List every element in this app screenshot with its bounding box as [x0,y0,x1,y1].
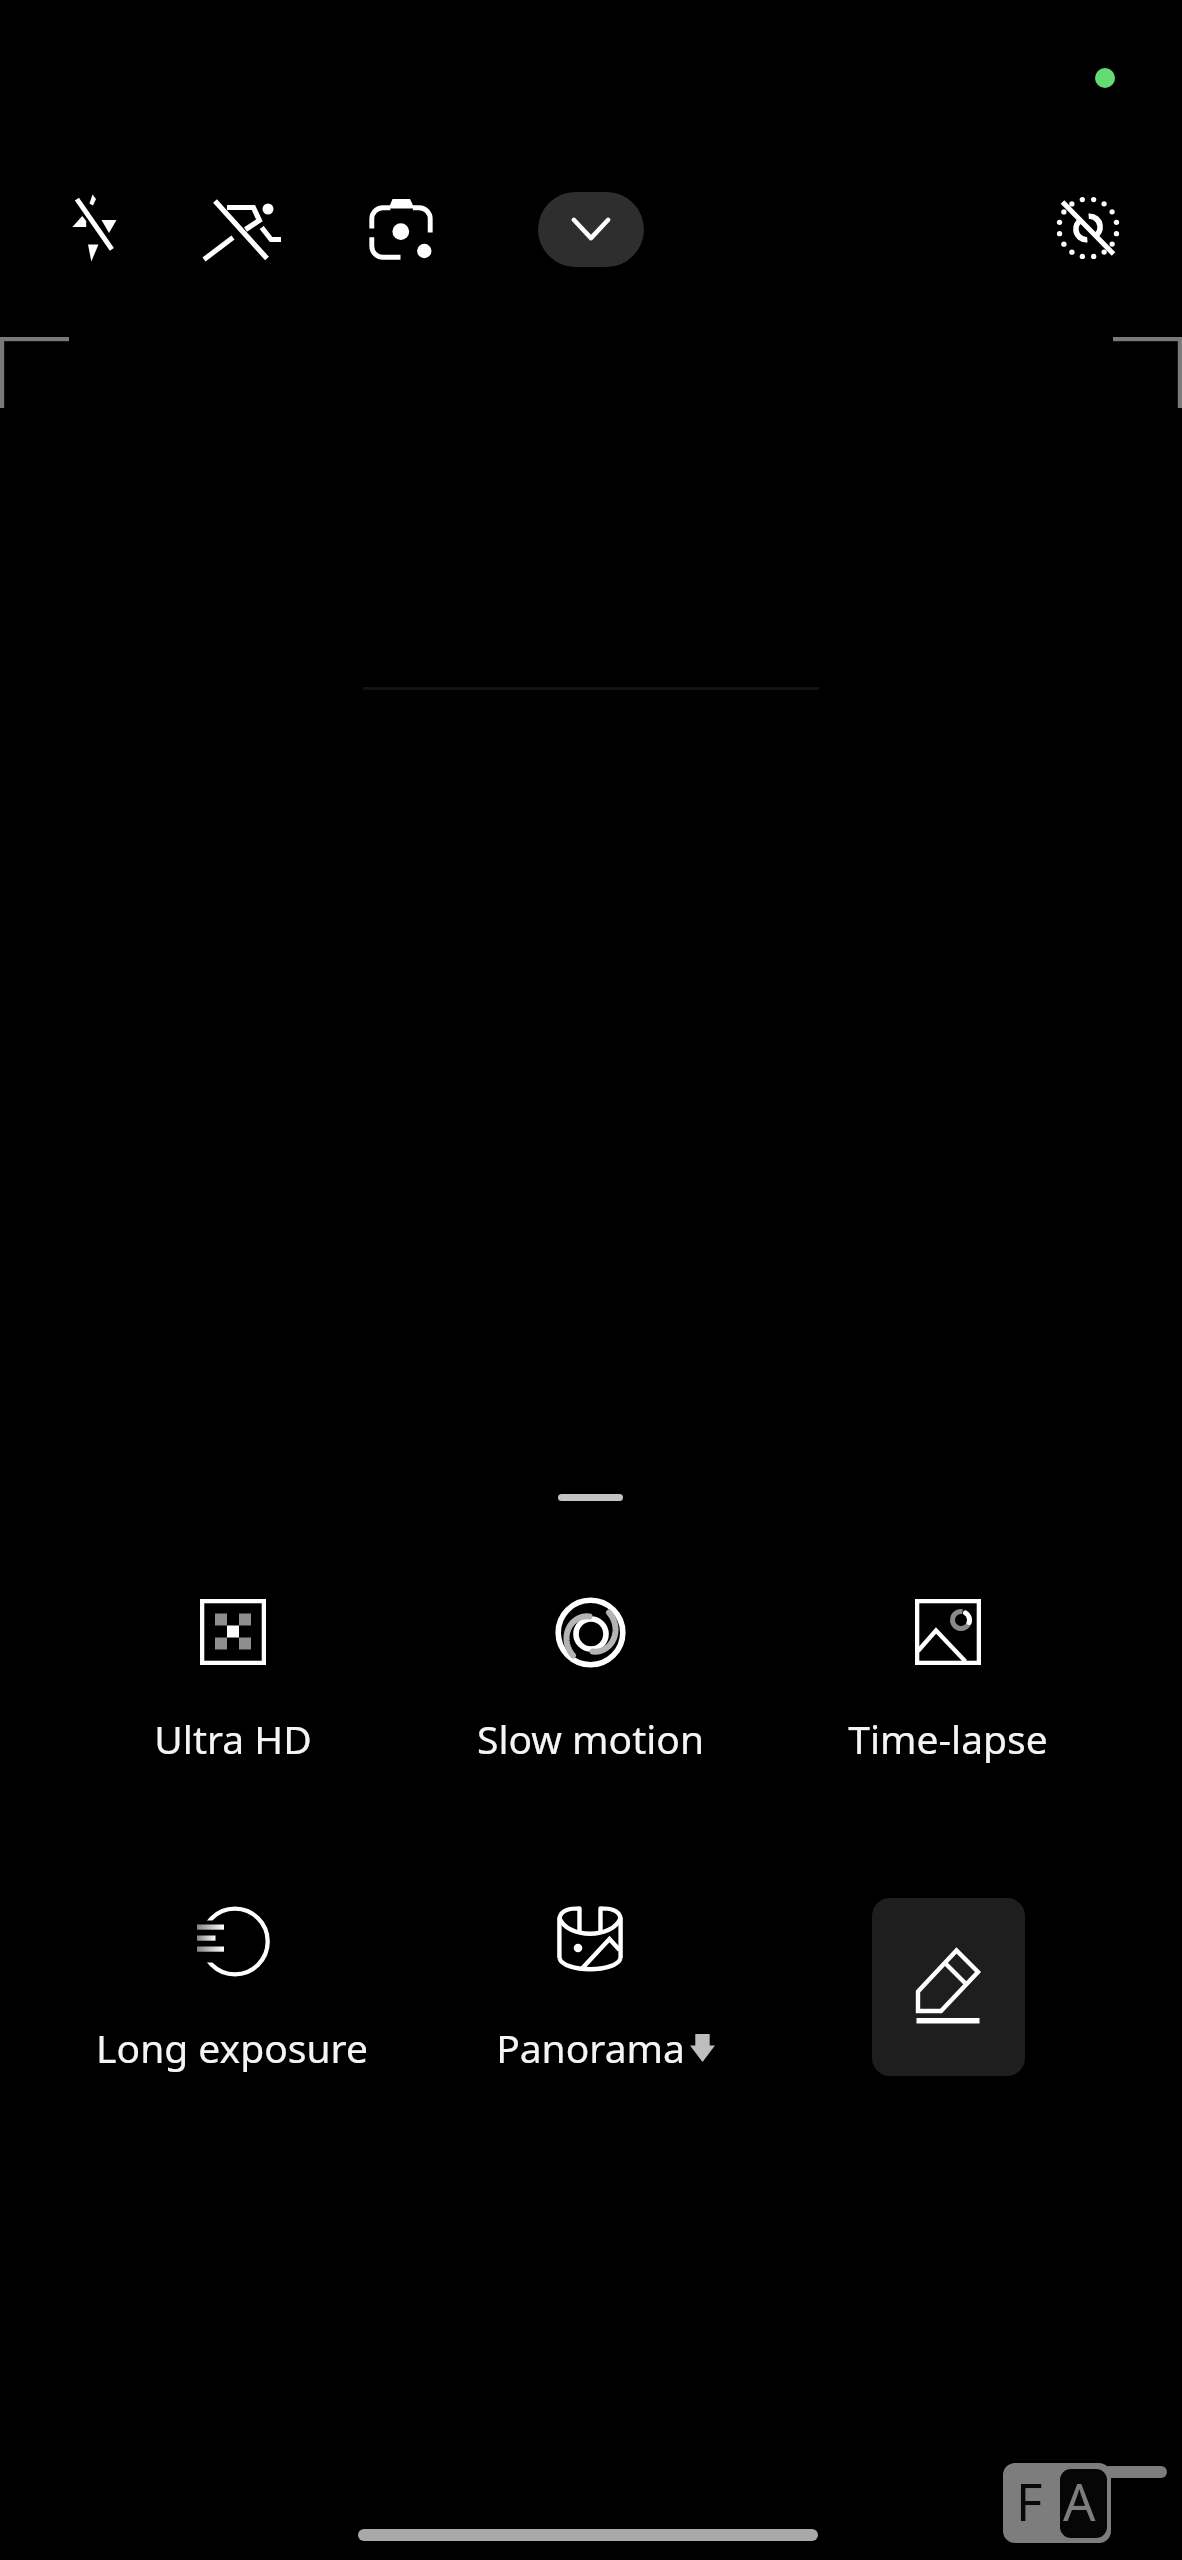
staticText: Slow motion [477,1712,704,1765]
button[interactable]: More camera settings [538,192,644,267]
button[interactable]: Edit camera modes [872,1898,1025,2076]
button[interactable]: Motion photo off [181,169,301,289]
button[interactable]: Slow motion [420,1571,760,1761]
button[interactable]: Photo mode [341,170,461,289]
button[interactable]: Panorama [420,1880,760,2070]
button[interactable]: Long exposure [62,1880,402,2070]
staticText: Time-lapse [848,1712,1048,1765]
staticText: Panorama [496,2021,685,2074]
staticText: F [1016,2466,1043,2535]
button[interactable]: Time-lapse [778,1573,1118,1763]
button[interactable]: Timer off [1028,168,1148,288]
staticText: A [1063,2466,1096,2535]
staticText: Ultra HD [154,1712,312,1765]
staticText: Long exposure [96,2021,368,2074]
button[interactable]: Flash off [35,169,155,289]
button[interactable]: Ultra HD [63,1573,403,1763]
